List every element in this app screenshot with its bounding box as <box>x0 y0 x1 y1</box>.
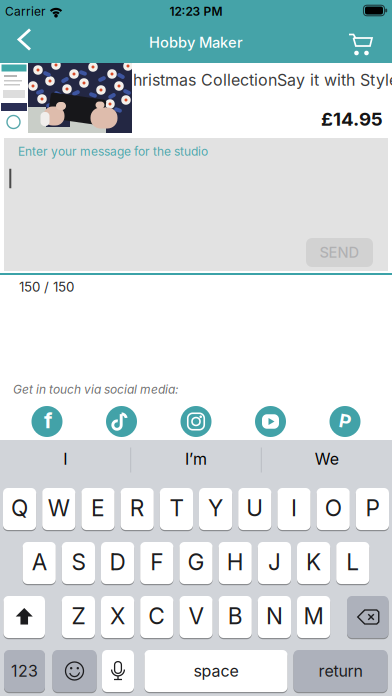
button[interactable]: C <box>140 596 173 638</box>
button[interactable] <box>347 596 388 638</box>
staticText: Y <box>208 495 223 521</box>
staticText: Enter your message for the studio <box>18 144 208 159</box>
button[interactable]: O <box>317 488 350 530</box>
button[interactable]: K <box>297 542 330 584</box>
staticText: F <box>150 549 163 575</box>
button[interactable]: P <box>329 406 360 437</box>
button[interactable]: L <box>336 542 369 584</box>
staticText: I’m <box>185 450 207 468</box>
button[interactable]: V <box>179 596 213 638</box>
button[interactable]: Q <box>3 488 36 530</box>
button[interactable]: R <box>121 488 154 530</box>
staticText: E <box>91 495 105 521</box>
button[interactable] <box>255 406 286 437</box>
staticText: return <box>318 662 362 680</box>
staticText: We <box>315 450 339 468</box>
button[interactable]: S <box>62 542 95 584</box>
staticText: O <box>325 495 342 521</box>
staticText: SEND <box>319 244 359 261</box>
button[interactable]: P <box>356 488 389 530</box>
button[interactable]: 123 <box>4 650 45 692</box>
staticText: 150 / 150 <box>19 279 74 295</box>
staticText: L <box>346 549 359 575</box>
button[interactable]: U <box>238 488 271 530</box>
button[interactable] <box>106 406 137 437</box>
button[interactable]: Z <box>62 596 95 638</box>
button[interactable]: A <box>23 542 56 584</box>
button[interactable]: Enter your message for the studio <box>4 138 388 271</box>
button[interactable]: I <box>15 441 115 477</box>
button[interactable]: f <box>31 406 62 437</box>
staticText: V <box>188 603 203 629</box>
button[interactable]: I <box>277 488 311 530</box>
button[interactable] <box>3 596 45 638</box>
staticText: X <box>110 603 125 629</box>
button[interactable]: X <box>101 596 134 638</box>
staticText: M <box>304 603 324 629</box>
button[interactable] <box>102 650 134 692</box>
staticText: J <box>268 549 281 575</box>
button[interactable] <box>180 406 211 437</box>
staticText: 123 <box>11 662 38 680</box>
button[interactable] <box>52 650 96 692</box>
button[interactable]: J <box>258 542 291 584</box>
button[interactable]: return <box>293 650 387 692</box>
button[interactable]: E <box>81 488 115 530</box>
staticText: Get in touch via social media: <box>13 382 178 397</box>
staticText: N <box>266 603 283 629</box>
staticText: Carrier <box>5 4 46 19</box>
button[interactable]: F <box>140 542 173 584</box>
button[interactable]: W <box>42 488 75 530</box>
button[interactable]: T <box>160 488 193 530</box>
button[interactable]: Y <box>199 488 232 530</box>
button[interactable]: B <box>219 596 252 638</box>
button[interactable]: G <box>179 542 213 584</box>
staticText: U <box>246 495 263 521</box>
staticText: I <box>291 495 297 521</box>
staticText: S <box>71 549 85 575</box>
staticText: G <box>187 549 204 575</box>
button[interactable]: space <box>144 650 287 692</box>
button[interactable] <box>11 21 38 57</box>
staticText: space <box>193 662 238 680</box>
button[interactable]: SEND <box>306 238 373 267</box>
staticText: hristmas CollectionSay it with Styles <box>133 71 392 89</box>
staticText: C <box>148 603 165 629</box>
button[interactable]: D <box>101 542 134 584</box>
staticText: K <box>306 549 321 575</box>
button[interactable]: M <box>297 596 330 638</box>
staticText: P <box>365 495 379 521</box>
staticText: P <box>339 410 351 432</box>
staticText: A <box>32 549 47 575</box>
button[interactable]: N <box>258 596 291 638</box>
staticText: f <box>44 408 52 433</box>
staticText: W <box>48 495 70 521</box>
button[interactable]: hristmas CollectionSay it with Styles <box>0 63 392 133</box>
button[interactable]: We <box>277 441 377 477</box>
staticText: I <box>63 450 67 468</box>
staticText: Q <box>11 495 28 521</box>
staticText: £14.95 <box>321 108 383 130</box>
button[interactable] <box>348 31 374 57</box>
staticText: B <box>228 603 243 629</box>
staticText: 12:23 PM <box>169 4 222 19</box>
button[interactable]: H <box>219 542 252 584</box>
button[interactable]: I’m <box>146 441 246 477</box>
staticText: Z <box>71 603 85 629</box>
staticText: D <box>110 549 126 575</box>
staticText: Hobby Maker <box>149 34 243 51</box>
staticText: H <box>227 549 244 575</box>
staticText: T <box>169 495 183 521</box>
staticText: R <box>130 495 145 521</box>
